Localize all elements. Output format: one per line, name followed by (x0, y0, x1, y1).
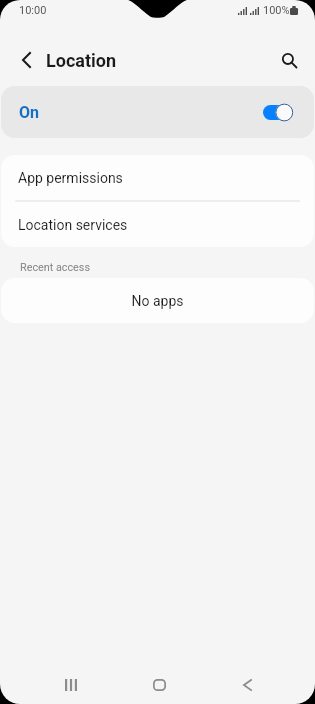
button[interactable]: Search (274, 45, 304, 75)
staticText: App permissions (18, 170, 123, 186)
button[interactable]: Navigate up (13, 47, 39, 73)
staticText: Recent access (20, 261, 90, 274)
staticText: Location (46, 50, 117, 71)
button[interactable]: No apps (1, 278, 314, 323)
button[interactable]: On (1, 86, 314, 138)
staticText: On (19, 103, 39, 122)
button[interactable]: App permissions (1, 155, 314, 200)
staticText: 10:00 (19, 4, 47, 17)
button[interactable]: Back (229, 666, 266, 703)
button[interactable]: Home (141, 666, 178, 703)
button[interactable]: Location services (1, 202, 314, 247)
staticText: No apps (131, 293, 184, 309)
staticText: 100% (263, 4, 290, 17)
button[interactable]: Recents (52, 666, 89, 703)
staticText: Location services (18, 217, 128, 233)
